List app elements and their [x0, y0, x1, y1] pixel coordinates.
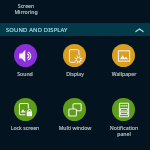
button[interactable]: Sound [0, 44, 50, 77]
staticText: Multi window [58, 124, 92, 131]
button[interactable]: Notification panel [99, 98, 148, 138]
button[interactable]: Wallpaper [99, 44, 148, 77]
button[interactable]: Lock screen [0, 98, 50, 131]
staticText: Wallpaper [107, 70, 141, 77]
button[interactable]: SOUND AND DISPLAY [0, 23, 150, 36]
staticText: Notification panel [107, 124, 141, 138]
staticText: Lock screen [8, 124, 42, 131]
staticText: Screen Mirroring [14, 2, 38, 16]
button[interactable]: Multi window [50, 98, 99, 131]
staticText: Sound [8, 70, 42, 77]
staticText: SOUND AND DISPLAY [6, 26, 68, 34]
button[interactable]: Screen Mirroring [8, 2, 44, 18]
button[interactable]: Display [50, 44, 99, 77]
staticText: Display [58, 70, 92, 77]
